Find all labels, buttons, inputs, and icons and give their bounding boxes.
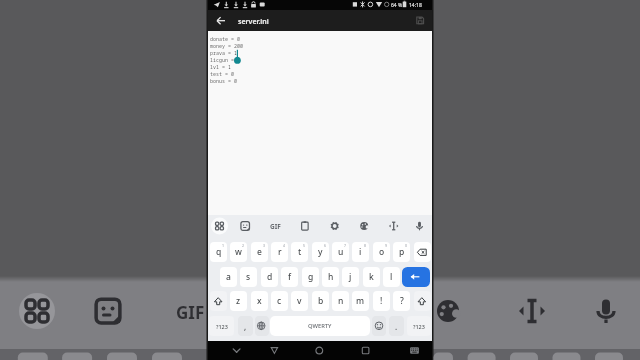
staticText: 1 xyxy=(222,243,225,248)
button[interactable]: o xyxy=(373,242,390,262)
staticText: 3 xyxy=(263,243,266,248)
button[interactable]: z xyxy=(230,291,247,311)
button[interactable]: l xyxy=(383,267,400,287)
button[interactable] xyxy=(210,217,230,235)
staticText: GIF xyxy=(270,222,281,231)
staticText: ? xyxy=(400,295,404,307)
button[interactable]: r xyxy=(271,242,288,262)
staticText: 7 xyxy=(344,243,347,248)
button[interactable]: , xyxy=(238,316,253,336)
staticText: e xyxy=(257,246,262,258)
staticText: g xyxy=(308,271,314,283)
button[interactable] xyxy=(255,316,269,336)
staticText: n xyxy=(338,295,344,307)
button[interactable]: ! xyxy=(373,291,390,311)
staticText: prava = 1 xyxy=(210,50,238,57)
button[interactable] xyxy=(413,13,428,28)
staticText: o xyxy=(379,246,385,258)
staticText: r xyxy=(278,246,282,258)
button[interactable] xyxy=(208,31,432,215)
button[interactable] xyxy=(354,217,374,235)
staticText: test = 0 xyxy=(210,71,235,78)
staticText: w xyxy=(235,246,242,258)
button[interactable] xyxy=(210,291,227,311)
staticText: 2 xyxy=(242,243,245,248)
button[interactable]: t xyxy=(291,242,308,262)
button[interactable]: w xyxy=(230,242,247,262)
staticText: server.ini xyxy=(238,17,269,27)
button[interactable]: ?123 xyxy=(407,316,431,336)
button[interactable]: GIF xyxy=(266,219,285,233)
button[interactable]: k xyxy=(363,267,380,287)
button[interactable]: j xyxy=(342,267,359,287)
staticText: c xyxy=(277,295,282,307)
button[interactable] xyxy=(325,217,345,235)
button[interactable]: ?123 xyxy=(209,316,234,336)
button[interactable] xyxy=(357,342,375,359)
button[interactable]: a xyxy=(220,267,237,287)
button[interactable] xyxy=(235,217,255,235)
staticText: . xyxy=(395,321,398,332)
button[interactable]: e xyxy=(251,242,268,262)
staticText: donate = 0 xyxy=(210,36,241,43)
button[interactable] xyxy=(414,291,431,311)
staticText: money = 200 xyxy=(210,43,244,50)
button[interactable]: . xyxy=(389,316,404,336)
button[interactable]: s xyxy=(240,267,257,287)
staticText: bonus = 0 xyxy=(210,78,238,85)
staticText: lvl = 1 xyxy=(210,64,232,71)
button[interactable] xyxy=(310,342,328,359)
button[interactable]: d xyxy=(261,267,278,287)
button[interactable] xyxy=(208,10,432,32)
staticText: 14:18 xyxy=(409,2,422,9)
staticText: l xyxy=(390,271,393,283)
button[interactable]: h xyxy=(322,267,339,287)
staticText: 8 xyxy=(364,243,367,248)
button[interactable]: u xyxy=(332,242,349,262)
staticText: f xyxy=(288,271,292,283)
button[interactable]: f xyxy=(281,267,298,287)
staticText: d xyxy=(267,271,273,283)
button[interactable] xyxy=(414,242,431,262)
button[interactable]: g xyxy=(302,267,319,287)
staticText: s xyxy=(246,271,251,283)
button[interactable]: y xyxy=(312,242,329,262)
staticText: i xyxy=(359,246,362,258)
staticText: 9 xyxy=(385,243,388,248)
button[interactable] xyxy=(228,342,246,359)
button[interactable] xyxy=(214,13,229,28)
staticText: ?123 xyxy=(216,323,228,330)
staticText: y xyxy=(318,246,323,258)
button[interactable]: p xyxy=(393,242,410,262)
staticText: 5 xyxy=(303,243,306,248)
button[interactable] xyxy=(295,217,315,235)
staticText: , xyxy=(244,321,247,332)
staticText: GIF xyxy=(176,301,205,324)
button[interactable]: c xyxy=(271,291,288,311)
button[interactable] xyxy=(406,342,424,359)
staticText: q xyxy=(216,246,222,258)
button[interactable]: ? xyxy=(393,291,410,311)
button[interactable] xyxy=(265,342,283,359)
staticText: p xyxy=(399,246,405,258)
button[interactable]: x xyxy=(251,291,268,311)
button[interactable] xyxy=(372,316,386,336)
button[interactable]: q xyxy=(210,242,227,262)
button[interactable] xyxy=(384,217,404,235)
button[interactable]: m xyxy=(352,291,369,311)
button[interactable]: b xyxy=(312,291,329,311)
staticText: ! xyxy=(380,295,383,307)
button[interactable]: QWERTY xyxy=(270,316,370,336)
button[interactable]: n xyxy=(332,291,349,311)
button[interactable]: v xyxy=(291,291,308,311)
staticText: ?123 xyxy=(413,323,425,330)
button[interactable]: i xyxy=(352,242,369,262)
staticText: v xyxy=(297,295,302,307)
staticText: a xyxy=(226,271,231,283)
staticText: j xyxy=(349,271,352,283)
staticText: u xyxy=(338,246,344,258)
button[interactable] xyxy=(410,217,430,235)
button[interactable] xyxy=(402,267,430,287)
staticText: b xyxy=(318,295,324,307)
staticText: 6 xyxy=(324,243,327,248)
